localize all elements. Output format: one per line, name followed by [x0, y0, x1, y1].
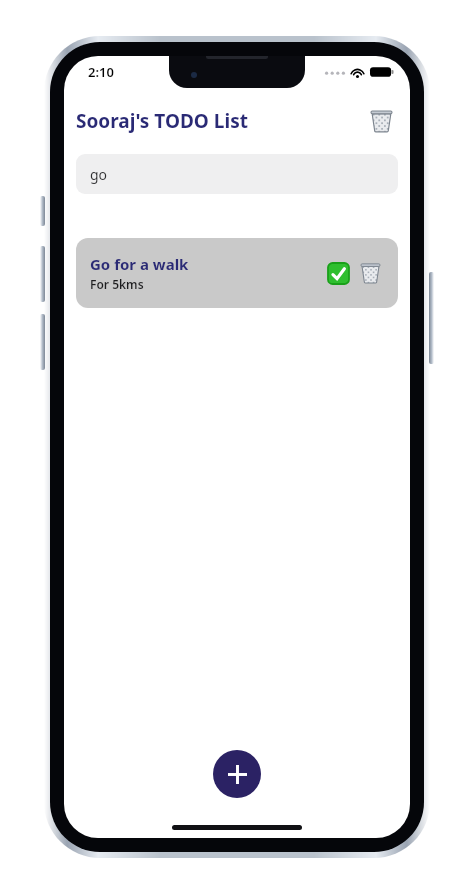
button[interactable]: Mark complete: [324, 259, 352, 287]
staticText: go: [90, 165, 108, 184]
staticText: For 5kms: [90, 276, 144, 292]
button[interactable]: Delete all tasks: [366, 106, 396, 136]
button[interactable]: Delete task: [356, 259, 384, 287]
staticText: Go for a walk: [90, 254, 189, 274]
staticText: Sooraj's TODO List: [76, 108, 248, 134]
button[interactable]: go: [76, 154, 398, 194]
button[interactable]: Go for a walk: [76, 238, 398, 308]
staticText: 2:10: [88, 63, 114, 81]
button[interactable]: Add task: [213, 750, 261, 798]
